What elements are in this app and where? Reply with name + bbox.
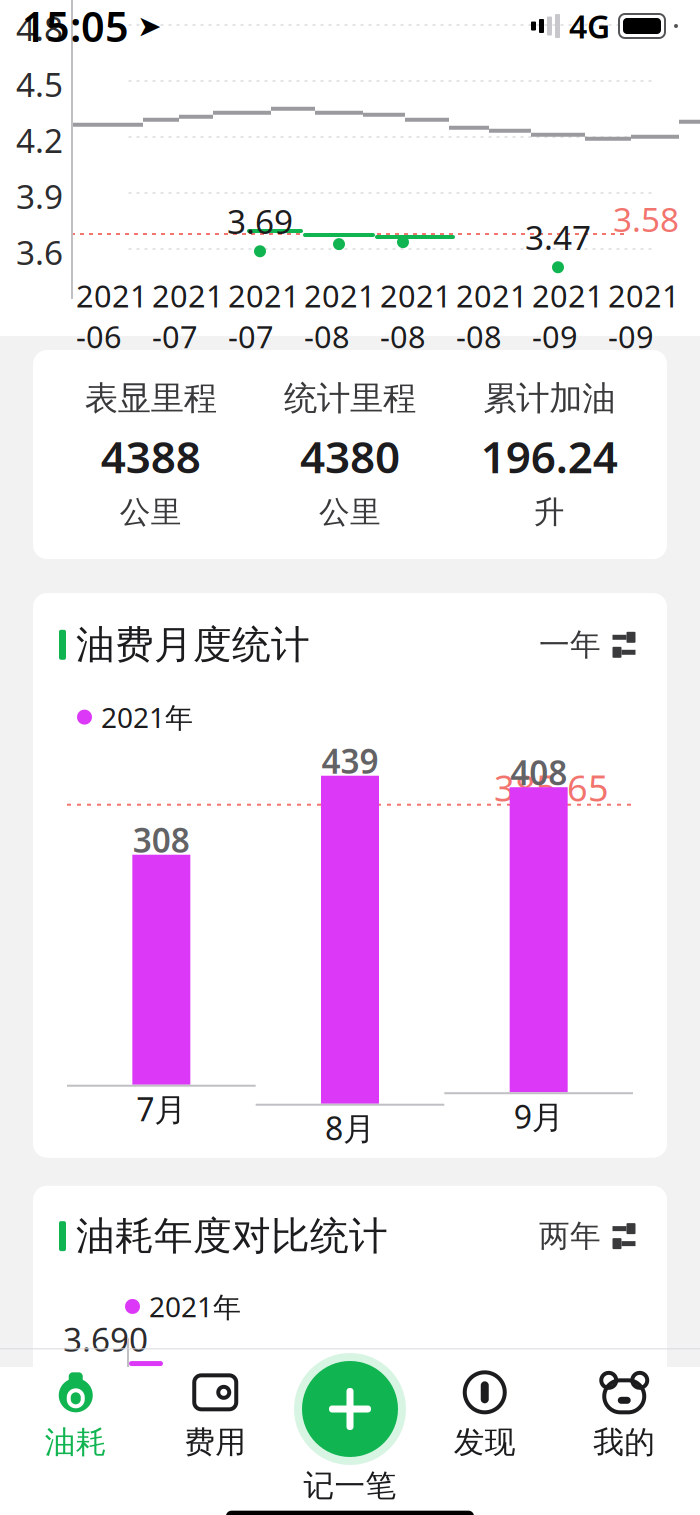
- button[interactable]: 我的: [554, 1361, 694, 1467]
- staticText: 2021-09: [532, 275, 604, 357]
- staticText: 发现: [454, 1423, 516, 1461]
- staticText: 2021-08: [304, 275, 376, 357]
- staticText: 4.8: [16, 6, 63, 50]
- staticText: 油耗: [45, 1423, 107, 1461]
- staticText: 公里: [120, 493, 182, 531]
- staticText: 3.69: [227, 199, 293, 243]
- staticText: 3.6: [16, 230, 63, 274]
- button[interactable]: 发现: [415, 1361, 554, 1467]
- staticText: 4G: [569, 5, 610, 47]
- staticText: 两年: [539, 1217, 601, 1255]
- staticText: 3.9: [16, 174, 63, 218]
- staticText: 2021-07: [152, 275, 224, 357]
- staticText: 8月: [325, 1106, 375, 1149]
- staticText: 7月: [136, 1087, 186, 1130]
- staticText: 我的: [593, 1423, 655, 1461]
- staticText: 9月: [514, 1095, 564, 1137]
- button[interactable]: 两年: [535, 1213, 641, 1259]
- staticText: 439: [321, 739, 378, 783]
- staticText: 升: [534, 493, 565, 531]
- staticText: ➤: [137, 9, 162, 43]
- staticText: 2021年: [149, 1288, 241, 1325]
- staticText: 2021-08: [380, 275, 452, 357]
- button[interactable]: 费用: [145, 1361, 285, 1467]
- staticText: 公里: [319, 493, 381, 531]
- staticText: 油耗年度对比统计: [76, 1212, 388, 1260]
- staticText: 385.65: [494, 764, 609, 811]
- staticText: 记一笔: [303, 1467, 396, 1505]
- button[interactable]: 油耗: [6, 1361, 145, 1467]
- staticText: 累计加油: [483, 378, 615, 419]
- staticText: 308: [133, 818, 190, 862]
- staticText: 15:05: [22, 0, 129, 53]
- staticText: 一年: [539, 626, 601, 664]
- staticText: 2021-06: [76, 275, 148, 357]
- staticText: 2021-08: [456, 275, 528, 357]
- staticText: 3.47: [525, 215, 591, 259]
- staticText: 2021年: [101, 698, 193, 736]
- staticText: 4.5: [16, 62, 63, 106]
- staticText: 费用: [184, 1423, 246, 1461]
- staticText: 油费月度统计: [76, 621, 310, 668]
- staticText: 196.24: [481, 427, 618, 485]
- staticText: 408: [510, 750, 567, 794]
- button[interactable]: 记一笔: [294, 1353, 406, 1465]
- staticText: 3.58: [613, 197, 679, 241]
- staticText: 4.2: [16, 118, 63, 162]
- staticText: 4380: [300, 427, 400, 485]
- button[interactable]: 一年: [535, 622, 641, 668]
- staticText: 4388: [101, 427, 201, 485]
- staticText: 2021-09: [608, 275, 680, 357]
- staticText: 表显里程: [85, 378, 217, 419]
- staticText: 2021-07: [228, 275, 300, 357]
- staticText: 3.68: [47, 1373, 113, 1417]
- staticText: 3.690: [63, 1317, 148, 1361]
- staticText: 统计里程: [284, 378, 416, 419]
- staticText: 3.64: [47, 1451, 113, 1495]
